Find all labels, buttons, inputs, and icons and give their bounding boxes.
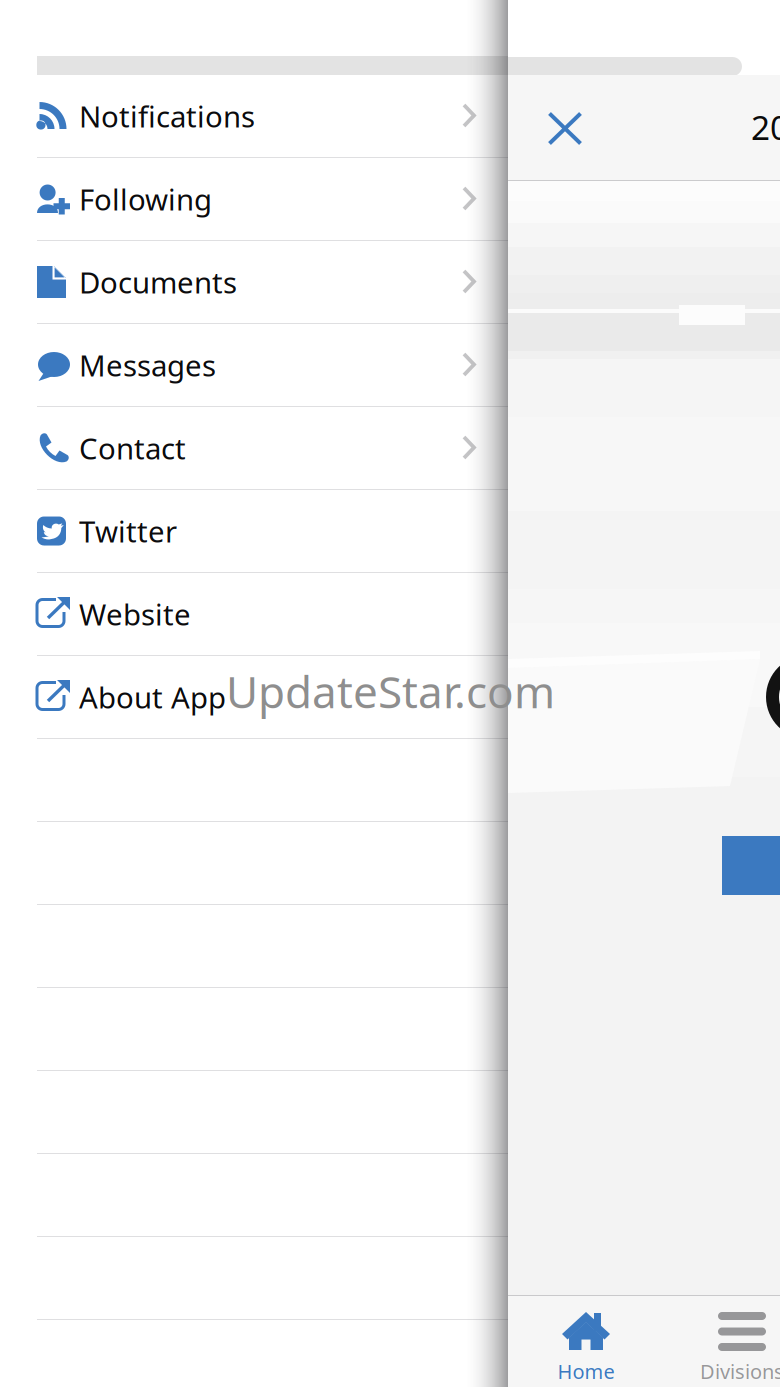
button[interactable]: Close menu bbox=[527, 76, 603, 181]
staticText: Messages bbox=[79, 345, 216, 384]
button[interactable]: Messages bbox=[37, 324, 508, 407]
staticText: Notifications bbox=[79, 96, 255, 135]
staticText: Documents bbox=[79, 262, 237, 301]
staticText: Following bbox=[79, 179, 212, 218]
staticText: 2018 Conference bbox=[751, 105, 780, 149]
staticText: Website bbox=[79, 594, 191, 633]
button[interactable]: About App bbox=[37, 656, 508, 739]
button[interactable]: Notifications bbox=[37, 75, 508, 158]
button[interactable]: Twitter bbox=[37, 490, 508, 573]
staticText: UpdateStar.com bbox=[226, 662, 555, 720]
staticText: Contact bbox=[79, 428, 186, 467]
button[interactable]: Home bbox=[508, 1296, 664, 1387]
staticText: Divisions bbox=[700, 1358, 780, 1385]
staticText: About App bbox=[79, 677, 226, 716]
button[interactable]: Divisions bbox=[664, 1296, 780, 1387]
staticText: Home bbox=[557, 1358, 614, 1385]
button[interactable]: Documents bbox=[37, 241, 508, 324]
button[interactable]: Website bbox=[37, 573, 508, 656]
button[interactable]: Contact bbox=[37, 407, 508, 490]
staticText: Twitter bbox=[79, 511, 177, 550]
button[interactable]: Following bbox=[37, 158, 508, 241]
